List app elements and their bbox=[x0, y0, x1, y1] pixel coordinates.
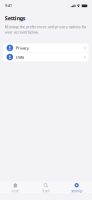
button[interactable]: Home bbox=[0, 181, 31, 193]
staticText: 9:41 bbox=[5, 4, 12, 8]
staticText: Manage the preferences and privacy optio… bbox=[5, 24, 87, 34]
staticText: Settings bbox=[5, 14, 26, 22]
button[interactable]: Data bbox=[3, 53, 89, 61]
staticText: Data bbox=[16, 54, 24, 60]
staticText: Settings bbox=[71, 189, 82, 193]
staticText: Search bbox=[42, 189, 50, 193]
button[interactable]: Search bbox=[31, 181, 61, 193]
staticText: Privacy bbox=[16, 45, 29, 51]
button[interactable]: Settings bbox=[61, 181, 92, 193]
button[interactable]: Privacy bbox=[3, 43, 89, 52]
staticText: Home bbox=[11, 189, 19, 193]
